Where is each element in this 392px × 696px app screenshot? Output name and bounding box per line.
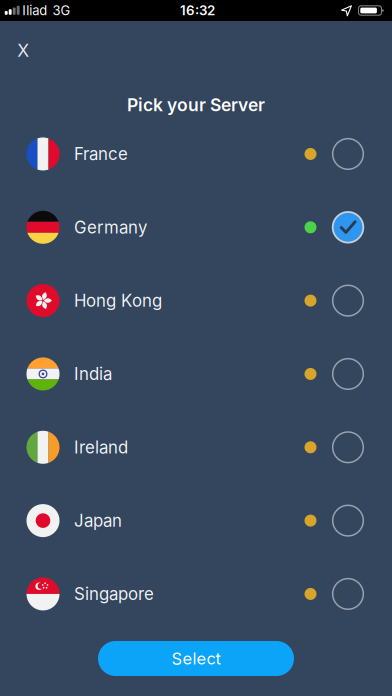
- button[interactable]: Close: [1, 28, 45, 72]
- button[interactable]: Singapore: [0, 557, 392, 631]
- button[interactable]: Select: [98, 641, 294, 676]
- staticText: Germany: [74, 217, 147, 237]
- button[interactable]: Germany: [0, 191, 392, 264]
- staticText: Hong Kong: [74, 290, 162, 311]
- staticText: Iliad: [22, 3, 47, 18]
- staticText: Japan: [74, 510, 122, 531]
- staticText: 3G: [52, 3, 70, 18]
- staticText: Singapore: [74, 584, 154, 604]
- staticText: X: [17, 40, 29, 61]
- staticText: India: [74, 364, 112, 384]
- staticText: Select: [171, 648, 220, 668]
- staticText: 16:32: [180, 2, 215, 18]
- button[interactable]: Hong Kong: [0, 264, 392, 337]
- button[interactable]: India: [0, 337, 392, 411]
- button[interactable]: Ireland: [0, 411, 392, 484]
- staticText: Ireland: [74, 437, 128, 457]
- button[interactable]: Japan: [0, 484, 392, 557]
- staticText: Pick your Server: [127, 94, 265, 115]
- button[interactable]: France: [0, 117, 392, 191]
- staticText: France: [74, 144, 128, 164]
